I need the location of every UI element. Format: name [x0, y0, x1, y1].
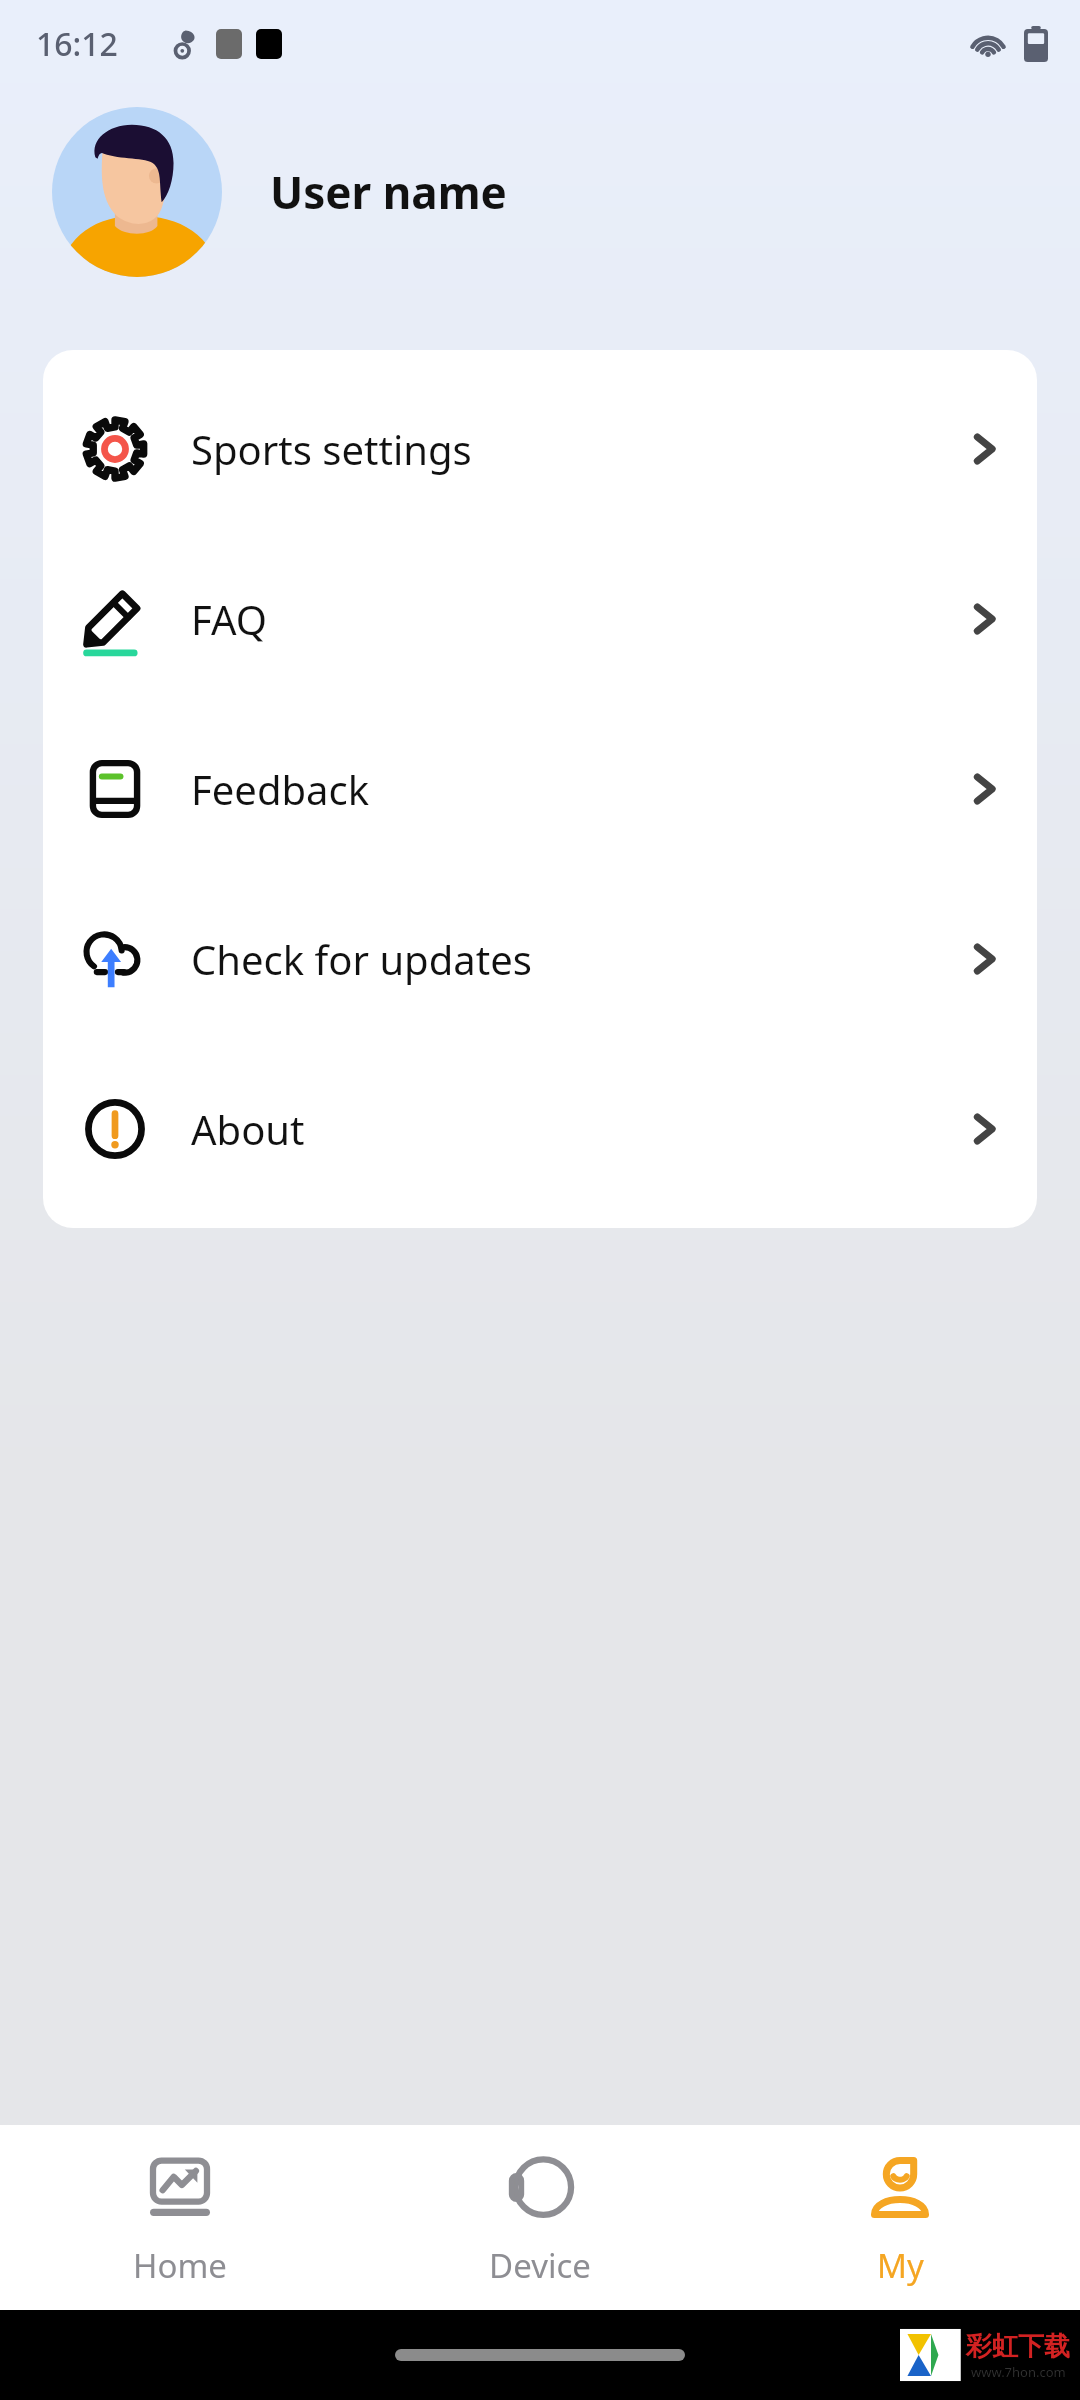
- staticText: About: [191, 1102, 305, 1156]
- staticText: My: [877, 2243, 924, 2288]
- staticText: 彩虹下载: [966, 2330, 1070, 2363]
- other: Feedback: [83, 757, 147, 821]
- staticText: Device: [489, 2243, 591, 2288]
- staticText: FAQ: [191, 592, 267, 646]
- button[interactable]: Home: [0, 2125, 360, 2310]
- button[interactable]: My: [720, 2125, 1080, 2310]
- button[interactable]: Sports settings: [43, 364, 1037, 534]
- button[interactable]: FAQ: [43, 534, 1037, 704]
- staticText: www.7hon.com: [971, 2363, 1066, 2381]
- other: About: [83, 1097, 147, 1161]
- other: Check for updates: [83, 927, 147, 991]
- staticText: 16:12: [36, 22, 118, 66]
- staticText: Sports settings: [191, 422, 472, 476]
- other: FAQ: [83, 587, 147, 651]
- staticText: Feedback: [191, 762, 370, 816]
- staticText: User name: [270, 162, 507, 222]
- staticText: Home: [133, 2243, 227, 2288]
- staticText: Check for updates: [191, 932, 532, 986]
- other: Sports settings: [83, 417, 147, 481]
- button[interactable]: Device: [360, 2125, 720, 2310]
- button[interactable]: Feedback: [43, 704, 1037, 874]
- button[interactable]: User name: [0, 92, 1080, 292]
- button[interactable]: About: [43, 1044, 1037, 1214]
- button[interactable]: Check for updates: [43, 874, 1037, 1044]
